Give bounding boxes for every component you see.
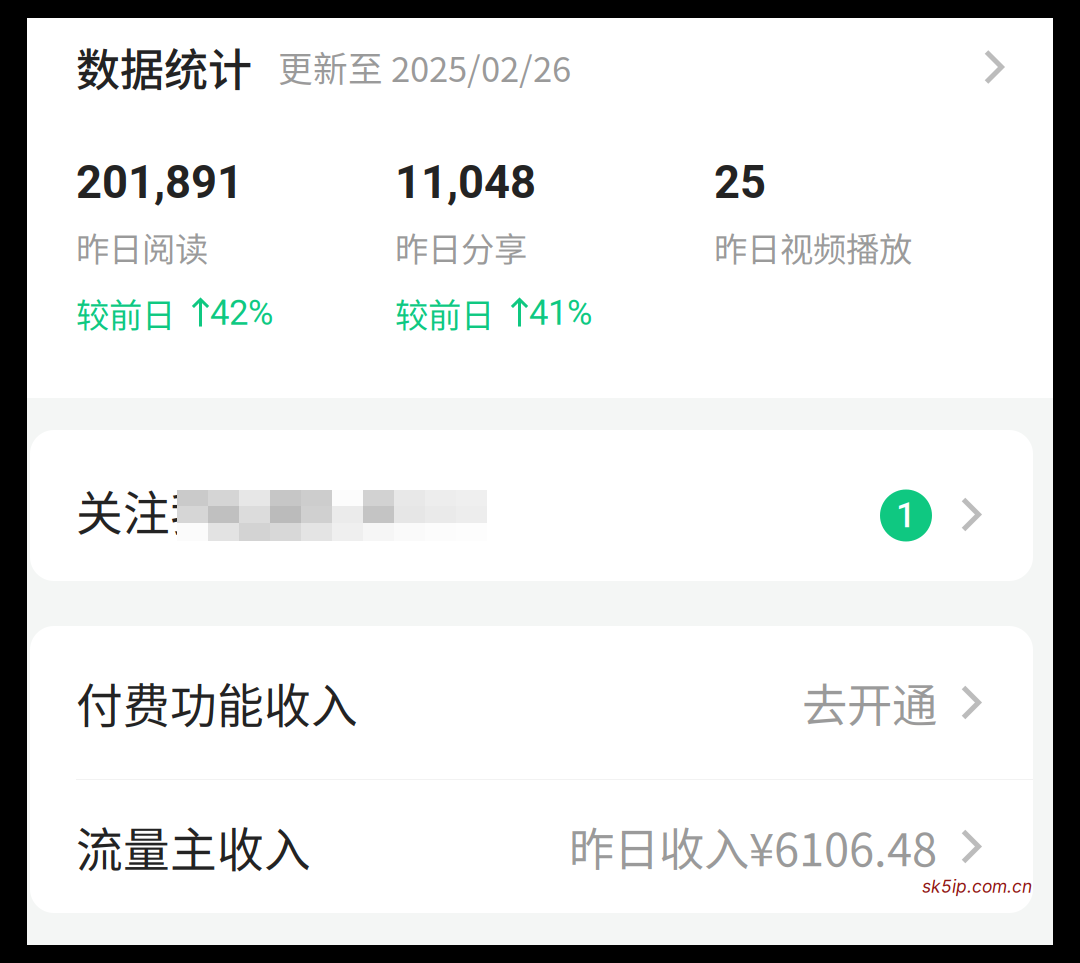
staticText: 昨日分享 bbox=[395, 223, 527, 271]
staticText: 较前日 bbox=[395, 289, 494, 337]
staticText: 去开通 bbox=[802, 670, 937, 735]
button[interactable]: 数据统计 bbox=[27, 18, 1053, 116]
staticText: 昨日阅读 bbox=[76, 223, 208, 271]
staticText: 数据统计 bbox=[76, 35, 252, 99]
staticText: 付费功能收入 bbox=[76, 669, 358, 736]
staticText: 1 bbox=[896, 495, 916, 536]
staticText: 流量主收入 bbox=[76, 813, 311, 880]
button[interactable]: 付费功能收入 bbox=[30, 626, 1033, 779]
staticText: 关注我的 bbox=[76, 476, 264, 544]
staticText: 更新至 2025/02/26 bbox=[278, 42, 571, 92]
staticText: 较前日 bbox=[76, 289, 175, 337]
button[interactable]: 流量主收入 bbox=[30, 780, 1033, 913]
staticText: 昨日收入¥6106.48 bbox=[569, 814, 937, 879]
button[interactable]: 关注我的 bbox=[30, 430, 1033, 581]
staticText: 201,891 bbox=[76, 156, 243, 209]
staticText: 11,048 bbox=[395, 156, 536, 209]
staticText: 昨日视频播放 bbox=[714, 223, 912, 271]
staticText: 25 bbox=[714, 156, 766, 209]
staticText: sk5ip.com.cn bbox=[922, 876, 1032, 897]
staticText: 42% bbox=[210, 293, 273, 333]
staticText: 41% bbox=[529, 293, 592, 333]
